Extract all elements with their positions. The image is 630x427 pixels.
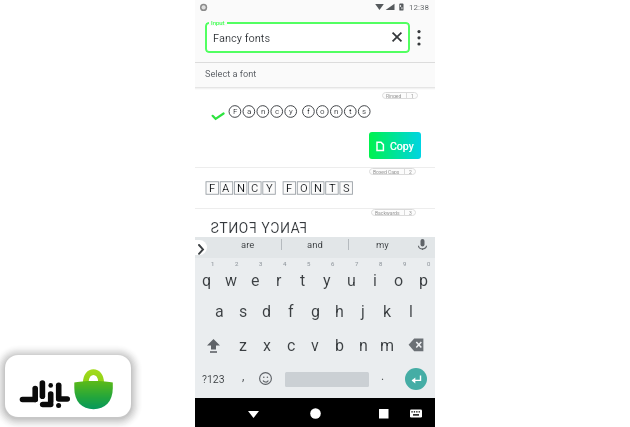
button[interactable]: Emoji [253,360,277,396]
button[interactable]: d [255,294,279,328]
staticText: T [329,182,336,195]
button[interactable]: m [375,328,399,362]
button[interactable]: my [349,239,415,250]
button[interactable]: v [303,328,327,362]
staticText: 1 [211,260,215,267]
staticText: a [247,107,252,116]
button[interactable]: Enter [399,360,432,396]
button[interactable]: 4 [267,258,291,294]
staticText: C [251,182,259,195]
button[interactable]: ?123 [198,360,228,396]
button[interactable]: a [207,294,231,328]
staticText: Select a font [205,68,257,79]
button[interactable]: , [233,360,253,396]
button[interactable]: are [214,239,281,250]
staticText: n [334,107,339,116]
button[interactable]: 5 [291,258,315,294]
button[interactable]: 2 [219,258,243,294]
button[interactable]: Back [241,398,265,427]
button[interactable]: k [375,294,399,328]
staticText: 2 [409,169,412,175]
staticText: t [349,107,352,116]
staticText: 3 [259,260,263,267]
staticText: 0 [427,260,431,267]
button[interactable]: Shift [195,328,231,362]
staticText: ?123 [202,373,225,385]
staticText: d [262,302,272,321]
staticText: Ringed [386,93,402,99]
staticText: Backwards [375,210,400,216]
button[interactable]: Switch keyboard [405,398,427,427]
button[interactable]: Boxed Caps [369,168,416,175]
staticText: n [359,336,368,355]
button[interactable]: l [399,294,423,328]
button[interactable]: z [231,328,255,362]
button[interactable]: f [279,294,303,328]
staticText: m [380,336,395,355]
button[interactable]: Backspace [399,328,435,362]
button[interactable]: c [279,328,303,362]
staticText: . [381,369,385,383]
staticText: 8 [379,260,383,267]
staticText: j [361,302,365,321]
button[interactable]: Bazaar [5,355,131,417]
staticText: 6 [331,260,335,267]
staticText: Boxed Caps [373,169,400,175]
staticText: N [237,182,245,195]
button[interactable]: 9 [387,258,411,294]
button[interactable]: s [231,294,255,328]
button[interactable]: Expand suggestions [187,240,207,255]
staticText: n [261,107,266,116]
staticText: 9 [403,260,407,267]
staticText: are [241,239,255,250]
button[interactable]: Fancy fonts [205,22,410,53]
staticText: F [233,107,238,116]
button[interactable]: h [327,294,351,328]
button[interactable]: More options [411,28,427,44]
button[interactable]: 8 [363,258,387,294]
staticText: Fancy fonts [213,32,271,45]
button[interactable]: n [351,328,375,362]
button[interactable]: Recent apps [371,398,395,427]
staticText: l [409,302,413,321]
staticText: c [275,107,280,116]
button[interactable]: b [327,328,351,362]
staticText: o [394,271,404,290]
button[interactable]: j [351,294,375,328]
staticText: N [314,182,322,195]
staticText: r [276,271,282,290]
button[interactable]: Ringed [382,92,418,99]
button[interactable]: 3 [243,258,267,294]
staticText: 7 [355,260,359,267]
button[interactable]: 7 [339,258,363,294]
staticText: 5 [307,260,311,267]
staticText: my [376,239,389,250]
staticText: A [222,182,230,195]
button[interactable]: x [255,328,279,362]
button[interactable]: 1 [195,258,219,294]
staticText: Y [266,182,273,195]
staticText: 3 [409,210,412,216]
button[interactable]: 6 [315,258,339,294]
button[interactable]: . [374,360,392,396]
staticText: Input [211,19,225,26]
button[interactable]: Copy [369,132,421,159]
staticText: 1 [411,93,414,99]
staticText: y [289,107,293,116]
button[interactable]: Select a font [195,63,435,87]
staticText: c [287,336,296,355]
button[interactable]: Clear text [389,29,405,45]
button[interactable]: Voice input [415,237,430,252]
button[interactable]: Backwards [371,209,416,216]
staticText: z [239,336,247,355]
button[interactable]: 0 [411,258,435,294]
staticText: S [343,182,350,195]
button[interactable]: g [303,294,327,328]
staticText: 12:38 [409,3,429,12]
staticText: x [263,336,271,355]
button[interactable]: Home [303,398,327,427]
button[interactable]: Space [281,360,371,396]
staticText: w [225,271,238,290]
staticText: h [335,302,344,321]
button[interactable]: and [282,239,348,250]
